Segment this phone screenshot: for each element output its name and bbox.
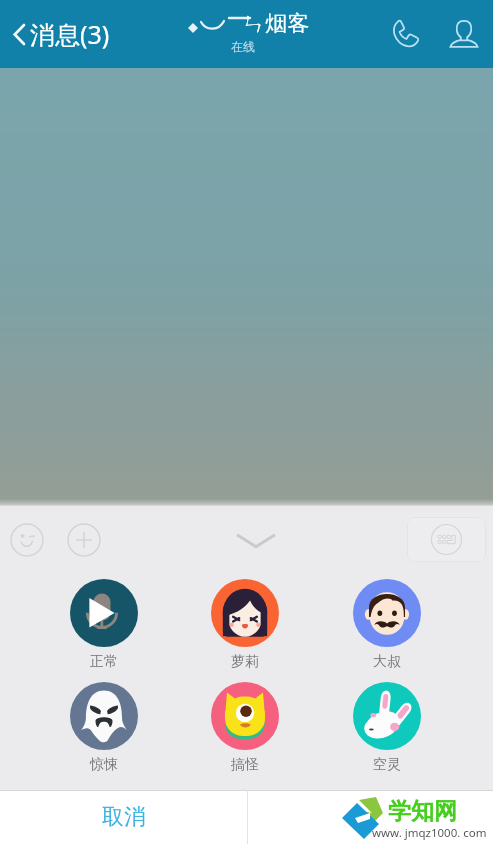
button[interactable]	[248, 790, 493, 844]
staticText: 萝莉	[231, 653, 259, 671]
staticText: 消息(3)	[30, 17, 110, 51]
staticText: 惊悚	[90, 756, 118, 774]
button[interactable]: 萝莉	[193, 579, 297, 671]
button[interactable]: Add	[67, 523, 101, 557]
staticText: 学知网	[388, 797, 457, 826]
staticText: www. jmqz1000. com	[372, 825, 487, 841]
staticText: 在线	[231, 39, 255, 54]
staticText: 搞怪	[231, 756, 259, 774]
button[interactable]: 惊悚	[52, 682, 156, 774]
button[interactable]: Collapse	[227, 524, 285, 556]
button[interactable]: 取消	[0, 790, 247, 844]
button[interactable]: 大叔	[335, 579, 439, 671]
staticText: 正常	[90, 653, 118, 671]
staticText: 大叔	[373, 653, 401, 671]
staticText: 空灵	[373, 756, 401, 774]
staticText: 取消	[102, 803, 146, 831]
button[interactable]: Keyboard	[407, 517, 486, 562]
button[interactable]: Call	[377, 0, 435, 68]
button[interactable]: 搞怪	[193, 682, 297, 774]
button[interactable]: 正常	[52, 579, 156, 671]
staticText: ㄣ烟客	[243, 10, 310, 38]
button[interactable]: Emoji	[10, 523, 44, 557]
button[interactable]: 空灵	[335, 682, 439, 774]
button[interactable]: 消息(3)	[0, 0, 120, 68]
button[interactable]: Profile	[435, 0, 493, 68]
